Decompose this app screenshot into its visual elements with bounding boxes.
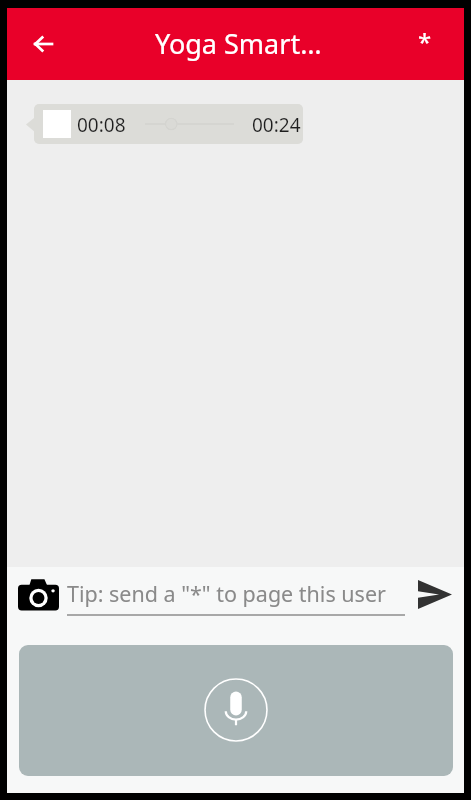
button[interactable]: Send (411, 570, 459, 618)
staticText: 00:24 (252, 112, 301, 138)
staticText: Yoga Smart… (155, 25, 322, 62)
staticText: * (418, 25, 432, 58)
button[interactable]: Back (23, 24, 63, 64)
button[interactable]: Page user (407, 26, 443, 62)
button[interactable]: Camera (11, 567, 65, 621)
button[interactable]: Hold to record voice message (19, 645, 453, 776)
button[interactable]: 00:08 (34, 104, 303, 144)
staticText: Tip: send a "*" to page this user (67, 579, 386, 608)
staticText: 00:08 (77, 112, 126, 138)
